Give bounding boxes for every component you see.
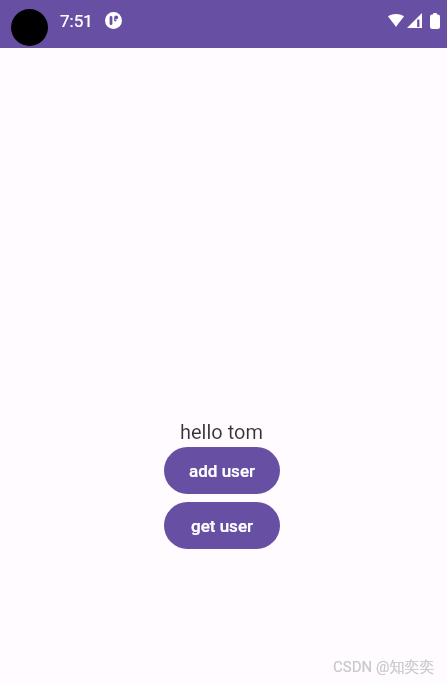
staticText: get user (191, 516, 253, 536)
staticText: 7:51 (60, 11, 93, 31)
other: Notification (105, 12, 122, 29)
staticText: add user (189, 461, 255, 481)
staticText: hello tom (180, 420, 264, 443)
button[interactable]: add user (164, 447, 280, 494)
staticText: CSDN @知奕奕 (333, 658, 435, 677)
button[interactable]: get user (164, 502, 280, 549)
